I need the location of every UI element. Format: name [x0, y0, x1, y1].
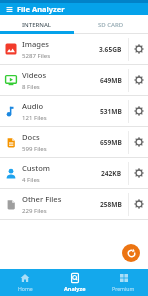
staticText: 5287 Files	[22, 51, 51, 59]
button[interactable]: Home	[0, 269, 50, 296]
staticText: 258MB	[100, 200, 122, 209]
staticText: 659MB	[100, 138, 122, 147]
button[interactable]	[129, 65, 148, 95]
button[interactable]: Other Files	[0, 189, 148, 219]
button[interactable]	[129, 189, 148, 219]
staticText: Premium	[112, 285, 135, 292]
staticText: 3.65GB	[99, 45, 122, 54]
button[interactable]	[129, 158, 148, 188]
staticText: Other Files	[22, 194, 62, 204]
staticText: 599 Files	[22, 144, 47, 152]
staticText: SD CARD	[98, 21, 124, 29]
staticText: INTERNAL	[22, 21, 52, 29]
button[interactable]	[6, 6, 13, 13]
staticText: 4 Files	[22, 175, 40, 183]
staticText: Home	[18, 285, 33, 292]
button[interactable]: Videos	[0, 65, 148, 95]
button[interactable]: Audio	[0, 96, 148, 126]
staticText: 121 Files	[22, 113, 47, 121]
staticText: 8 Files	[22, 82, 40, 90]
button[interactable]	[122, 244, 140, 262]
staticText: 229 Files	[22, 206, 47, 214]
button[interactable]	[129, 34, 148, 64]
staticText: Custom	[22, 163, 51, 173]
button[interactable]: Docs	[0, 127, 148, 157]
button[interactable]	[129, 96, 148, 126]
staticText: 531MB	[100, 107, 122, 116]
staticText: 242KB	[101, 169, 122, 178]
staticText: Analyze	[64, 285, 86, 292]
staticText: Images	[22, 39, 49, 49]
button[interactable]: Custom	[0, 158, 148, 188]
button[interactable]: Premium	[99, 269, 148, 296]
button[interactable]: INTERNAL	[0, 15, 74, 34]
staticText: File Analyzer	[17, 4, 65, 14]
button[interactable]: Images	[0, 34, 148, 64]
staticText: Docs	[22, 132, 40, 142]
staticText: 649MB	[100, 76, 122, 85]
staticText: Audio	[22, 101, 44, 111]
staticText: Videos	[22, 70, 47, 80]
button[interactable]: Analyze	[50, 269, 99, 296]
button[interactable]	[129, 127, 148, 157]
button[interactable]: SD CARD	[74, 15, 148, 34]
